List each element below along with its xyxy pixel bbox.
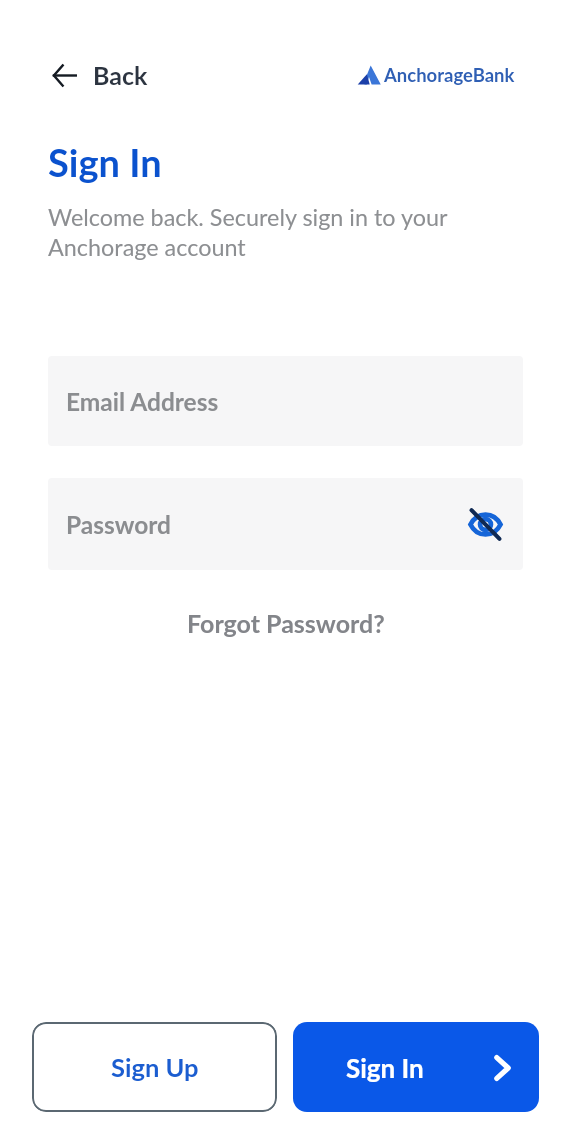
staticText: Sign Up [111, 1052, 199, 1083]
staticText: Forgot Password? [187, 608, 385, 638]
staticText: Welcome back. Securely sign in to your A… [48, 203, 523, 261]
staticText: AnchorageBank [384, 64, 515, 86]
staticText: Sign In [346, 1052, 424, 1083]
staticText: Password [66, 510, 171, 539]
staticText: Sign In [48, 139, 162, 185]
staticText: Email Address [66, 387, 219, 416]
button[interactable]: Sign Up [32, 1022, 277, 1112]
button[interactable]: Password [48, 478, 523, 570]
button[interactable]: Forgot Password? [179, 602, 393, 644]
button[interactable]: Email Address [48, 356, 523, 446]
staticText: Back [93, 60, 148, 90]
button[interactable]: Show password [463, 502, 507, 546]
button[interactable]: Sign In [293, 1022, 539, 1112]
button[interactable]: Back [47, 52, 154, 98]
